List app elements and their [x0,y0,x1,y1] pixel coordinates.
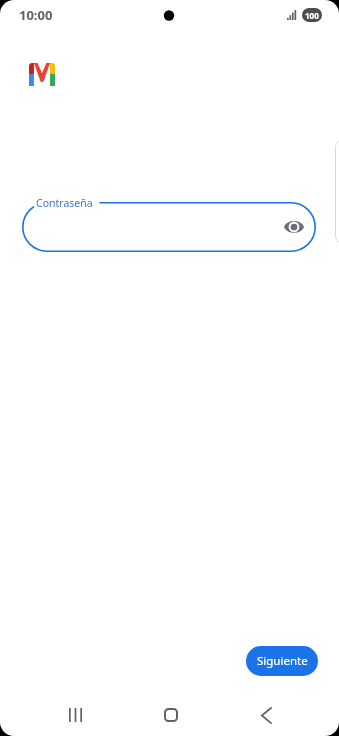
button[interactable]: Recientes [51,691,99,736]
button[interactable]: Inicio [147,691,195,736]
button[interactable]: Siguiente [246,646,318,676]
staticText: Siguiente [257,653,308,669]
button[interactable]: Contraseña [22,202,316,252]
staticText: 100 [305,10,319,21]
button[interactable]: Atrás [242,691,290,736]
staticText: 10:00 [19,6,53,24]
button[interactable]: Mostrar contraseña [281,214,307,240]
staticText: Contraseña [36,196,93,210]
